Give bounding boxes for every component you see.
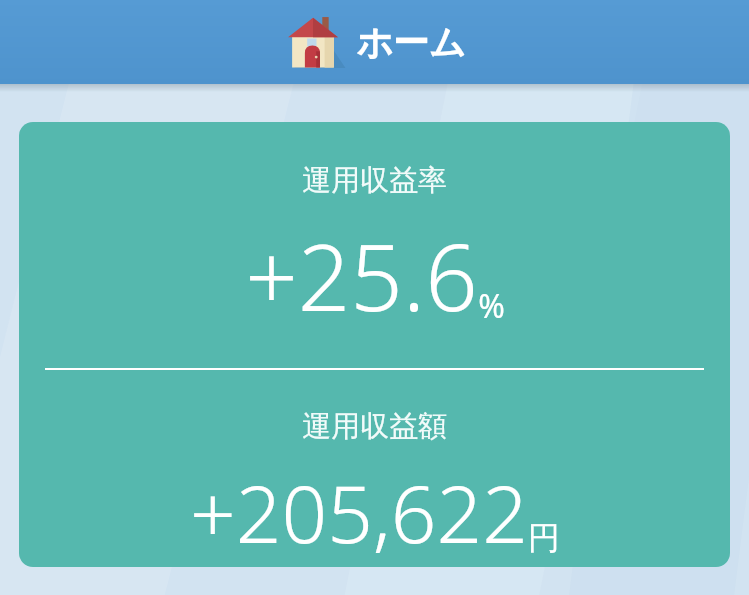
staticText: % (478, 284, 505, 328)
staticText: 運用収益額 (302, 408, 447, 445)
other: ホーム (284, 13, 342, 71)
staticText: 運用収益率 (302, 162, 447, 199)
button[interactable]: 運用収益率 (19, 122, 730, 567)
staticText: ホーム (356, 20, 466, 65)
staticText: +205,622 (190, 457, 528, 566)
staticText: +25.6 (245, 213, 478, 338)
staticText: 円 (528, 518, 560, 558)
